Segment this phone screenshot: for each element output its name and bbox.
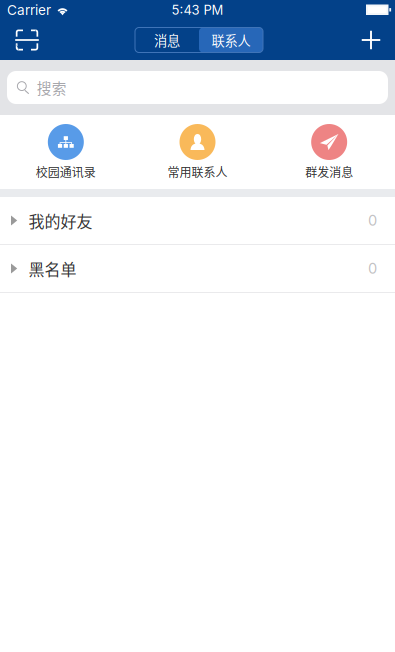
button[interactable]: Add xyxy=(348,20,394,60)
staticText: 联系人 xyxy=(211,30,250,50)
button[interactable]: 消息 xyxy=(135,27,199,52)
button[interactable]: 我的好友 xyxy=(0,197,395,245)
staticText: 黑名单 xyxy=(28,257,76,280)
button[interactable]: 校园通讯录 xyxy=(0,124,132,180)
staticText: 搜索 xyxy=(37,77,67,98)
button[interactable]: 联系人 xyxy=(199,27,263,52)
staticText: 常用联系人 xyxy=(167,163,227,180)
button[interactable]: 常用联系人 xyxy=(132,124,263,180)
staticText: Carrier xyxy=(7,2,51,18)
staticText: 消息 xyxy=(154,30,180,50)
staticText: 0 xyxy=(368,212,377,229)
staticText: 我的好友 xyxy=(28,209,92,232)
button[interactable]: 群发消息 xyxy=(263,124,395,180)
button[interactable]: 搜索 xyxy=(7,71,388,104)
staticText: 群发消息 xyxy=(305,163,353,180)
staticText: 校园通讯录 xyxy=(36,163,96,180)
staticText: 5:43 PM xyxy=(171,2,223,18)
button[interactable]: 黑名单 xyxy=(0,245,395,293)
button[interactable]: Scan QR code xyxy=(4,20,50,60)
staticText: 0 xyxy=(368,260,377,277)
